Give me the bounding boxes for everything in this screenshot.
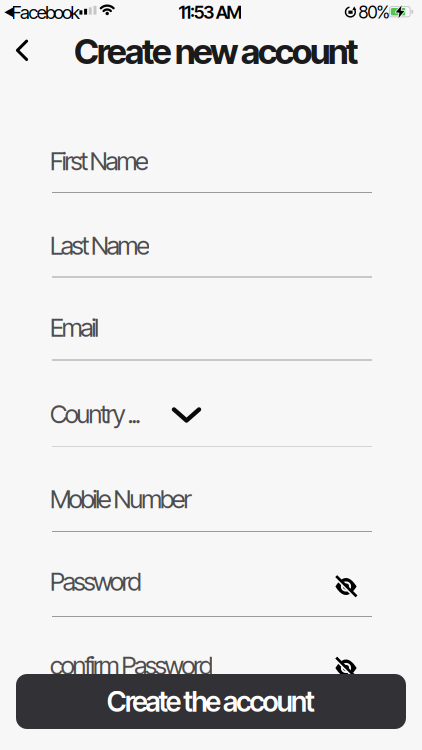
staticText: Create new account <box>74 30 358 72</box>
staticText: Country ... <box>50 399 141 429</box>
button[interactable]: confirm Password <box>0 643 422 687</box>
button[interactable]: Password <box>0 559 422 603</box>
staticText: 80% <box>358 2 389 23</box>
button[interactable]: Mobile Number <box>0 477 422 521</box>
button[interactable]: Create the account <box>16 674 406 729</box>
staticText: Password <box>50 566 142 597</box>
button[interactable]: Show confirm password <box>334 656 358 680</box>
button[interactable]: Last Name <box>0 223 422 267</box>
button[interactable]: Choose country <box>171 405 202 425</box>
staticText: Mobile Number <box>50 484 192 514</box>
staticText: 11:53 AM <box>178 1 242 23</box>
staticText: Facebook <box>12 1 79 23</box>
button[interactable]: Email <box>0 305 422 349</box>
staticText: First Name <box>50 146 149 176</box>
button[interactable]: First Name <box>0 139 422 183</box>
staticText: confirm Password <box>50 650 213 681</box>
staticText: Email <box>50 312 99 343</box>
button[interactable]: Country ... <box>0 392 422 436</box>
staticText: Create the account <box>107 685 315 718</box>
button[interactable]: Back <box>11 36 33 65</box>
staticText: Last Name <box>50 230 150 261</box>
button[interactable]: Show password <box>334 574 358 598</box>
